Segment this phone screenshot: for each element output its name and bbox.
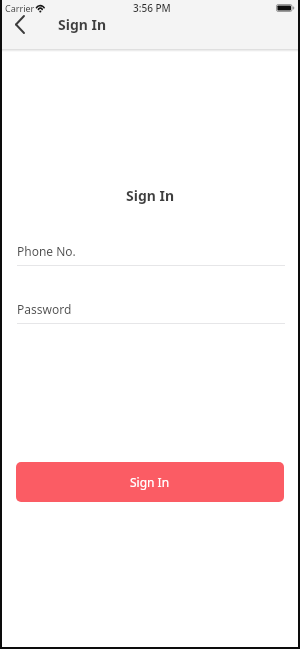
staticText: 3:56 PM — [133, 1, 171, 15]
staticText: Sign In — [58, 15, 107, 34]
button[interactable]: Sign In — [16, 462, 284, 502]
staticText: Phone No. — [17, 243, 76, 259]
button[interactable]: Back — [8, 8, 32, 40]
button[interactable]: Phone No. — [17, 243, 285, 266]
button[interactable]: Password — [17, 301, 285, 324]
staticText: Password — [17, 301, 72, 317]
staticText: Sign In — [130, 474, 170, 490]
staticText: Sign In — [0, 186, 300, 205]
staticText: Carrier — [5, 2, 35, 14]
